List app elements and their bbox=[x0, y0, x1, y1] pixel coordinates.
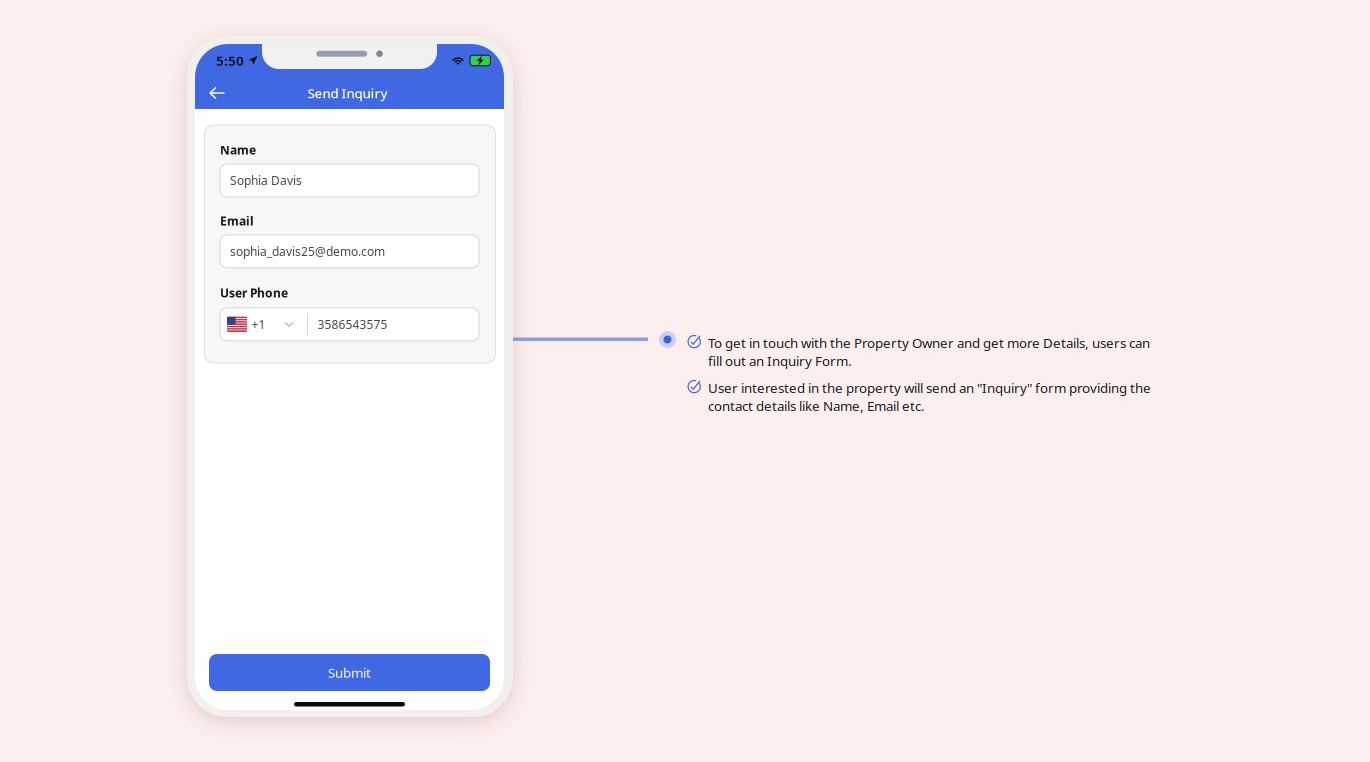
staticText: To get in touch with the Property Owner … bbox=[708, 334, 1150, 352]
staticText: User Phone bbox=[220, 285, 288, 301]
staticText: User interested in the property will sen… bbox=[708, 379, 1151, 397]
staticText: +1 bbox=[251, 316, 265, 332]
button[interactable]: Country code +1 bbox=[220, 308, 307, 341]
staticText: Sophia Davis bbox=[230, 172, 302, 188]
staticText: sophia_davis25@demo.com bbox=[230, 243, 385, 259]
staticText: Send Inquiry bbox=[307, 84, 387, 102]
staticText: 5:50 bbox=[216, 52, 244, 69]
staticText: Email bbox=[220, 213, 254, 229]
staticText: Name bbox=[220, 142, 256, 158]
staticText: 3586543575 bbox=[317, 316, 387, 332]
staticText: contact details like Name, Email etc. bbox=[708, 397, 925, 415]
button[interactable]: Back bbox=[195, 74, 255, 112]
staticText: fill out an Inquiry Form. bbox=[708, 352, 852, 370]
button[interactable]: Submit bbox=[209, 654, 490, 691]
staticText: Submit bbox=[328, 664, 371, 681]
